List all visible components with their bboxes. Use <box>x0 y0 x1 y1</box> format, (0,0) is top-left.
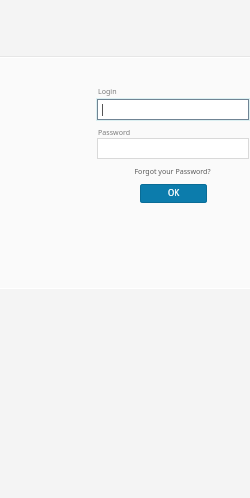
button[interactable]: OK <box>140 184 207 203</box>
button[interactable]: Password input field <box>97 138 249 159</box>
button[interactable]: Login input field <box>96 98 250 121</box>
staticText: Password <box>98 127 131 137</box>
staticText: OK <box>168 187 180 198</box>
button[interactable]: Forgot your Password? <box>97 166 248 176</box>
staticText: Login <box>98 86 117 96</box>
